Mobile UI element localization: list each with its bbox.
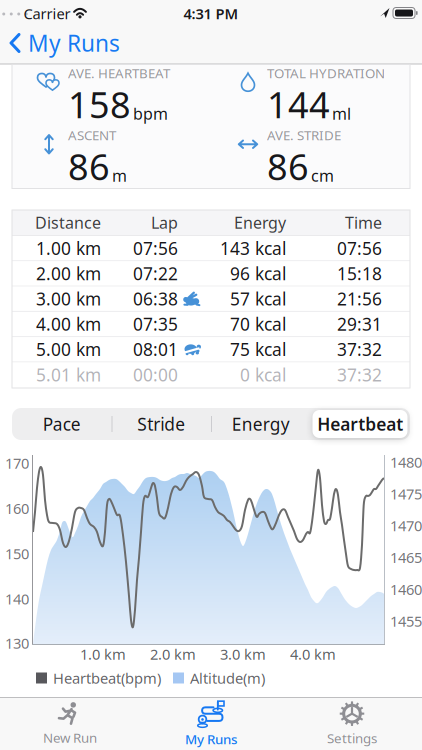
- staticText: ml: [332, 103, 351, 124]
- staticText: 07:56: [133, 237, 178, 260]
- staticText: AVE. HEARTBEAT: [68, 64, 170, 82]
- button[interactable]: Heartbeat: [310, 408, 410, 440]
- staticText: Altitude(m): [190, 668, 265, 688]
- staticText: 07:22: [133, 262, 178, 285]
- staticText: 2.0 km: [150, 644, 196, 664]
- staticText: 0 kcal: [240, 363, 286, 386]
- staticText: 2.00 km: [36, 262, 101, 285]
- staticText: 4:31 PM: [183, 4, 238, 23]
- staticText: bpm: [133, 103, 168, 124]
- staticText: 86: [68, 142, 110, 190]
- staticText: cm: [311, 165, 334, 186]
- staticText: Heartbeat(bpm): [53, 668, 161, 688]
- staticText: Time: [345, 212, 382, 233]
- staticText: 70 kcal: [230, 312, 286, 335]
- staticText: 1.0 km: [80, 644, 126, 664]
- staticText: 07:56: [337, 237, 382, 260]
- staticText: 150: [5, 544, 29, 563]
- staticText: 143 kcal: [220, 237, 286, 260]
- staticText: New Run: [43, 729, 97, 746]
- staticText: 1460: [390, 579, 422, 599]
- staticText: Energy: [232, 412, 290, 435]
- button[interactable]: Pace: [12, 408, 111, 440]
- staticText: Settings: [327, 729, 377, 747]
- staticText: 4.00 km: [36, 312, 101, 335]
- staticText: 5.01 km: [36, 363, 101, 386]
- staticText: 3.00 km: [36, 287, 101, 310]
- staticText: Heartbeat: [317, 412, 403, 435]
- staticText: 5.00 km: [36, 338, 101, 361]
- staticText: Pace: [43, 412, 81, 435]
- button[interactable]: Stride: [111, 408, 211, 440]
- staticText: AVE. STRIDE: [267, 126, 341, 144]
- staticText: 08:01: [133, 338, 178, 361]
- button[interactable]: Energy: [211, 408, 310, 440]
- staticText: 144: [267, 80, 330, 128]
- staticText: m: [112, 165, 127, 186]
- staticText: 29:31: [337, 312, 382, 335]
- staticText: 4.0 km: [290, 644, 336, 664]
- staticText: 1465: [390, 548, 422, 567]
- staticText: 1475: [390, 484, 422, 504]
- staticText: 130: [5, 633, 29, 653]
- staticText: TOTAL HYDRATION: [267, 64, 385, 82]
- staticText: Carrier: [23, 4, 70, 23]
- staticText: Distance: [35, 212, 101, 233]
- staticText: My Runs: [28, 28, 120, 58]
- staticText: 158: [68, 80, 131, 128]
- staticText: 1470: [390, 516, 422, 535]
- staticText: 170: [5, 453, 29, 473]
- staticText: 00:00: [133, 363, 178, 386]
- staticText: ASCENT: [68, 126, 116, 144]
- button[interactable]: New Run: [10, 699, 130, 749]
- staticText: 1480: [390, 452, 422, 472]
- staticText: 37:32: [337, 363, 382, 386]
- staticText: 140: [5, 589, 29, 609]
- staticText: 37:32: [337, 338, 382, 361]
- staticText: Lap: [151, 212, 178, 233]
- staticText: 1455: [390, 611, 422, 631]
- staticText: 96 kcal: [230, 262, 286, 285]
- staticText: 15:18: [337, 262, 382, 285]
- staticText: 57 kcal: [230, 287, 286, 310]
- staticText: 07:35: [133, 312, 178, 335]
- staticText: My Runs: [185, 730, 237, 748]
- button[interactable]: My Runs: [151, 699, 271, 749]
- staticText: 1.00 km: [36, 237, 101, 260]
- staticText: 75 kcal: [230, 338, 286, 361]
- staticText: 160: [5, 498, 29, 518]
- staticText: Stride: [137, 412, 185, 435]
- staticText: 21:56: [337, 287, 382, 310]
- button[interactable]: Back: [10, 28, 180, 58]
- staticText: 86: [267, 142, 309, 190]
- staticText: 3.0 km: [220, 644, 266, 664]
- staticText: Energy: [234, 212, 286, 233]
- staticText: 06:38: [133, 287, 178, 310]
- button[interactable]: Settings: [292, 699, 412, 749]
